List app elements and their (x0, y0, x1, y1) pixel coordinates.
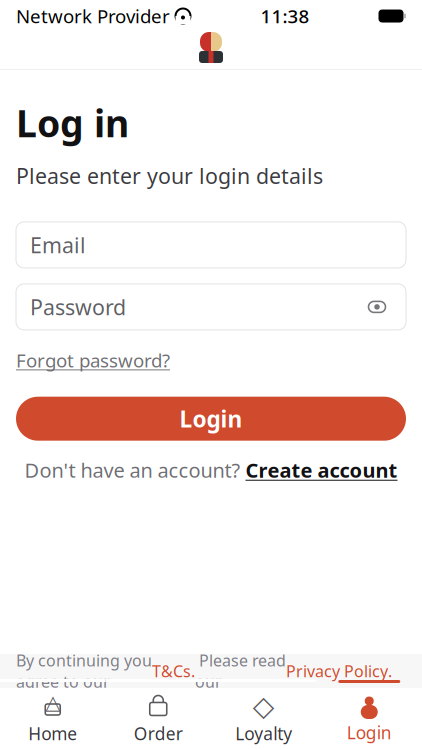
staticText: Login (179, 404, 242, 434)
button[interactable]: △ (0, 683, 105, 750)
button[interactable]: Order (105, 683, 211, 750)
staticText: Create account (245, 457, 397, 483)
staticText: T&Cs. (152, 660, 195, 682)
button[interactable]: T&Cs. (152, 660, 195, 682)
staticText: Please enter your login details (16, 162, 323, 190)
staticText: Privacy Policy. (286, 660, 392, 682)
staticText: Login (347, 721, 392, 744)
staticText: Don't have an account? (24, 457, 240, 483)
button[interactable]: Login (316, 684, 422, 750)
staticText: △ (45, 691, 60, 714)
staticText: Email (30, 231, 86, 259)
staticText: Please read our (195, 650, 286, 692)
staticText: Password (30, 293, 126, 321)
staticText: By continuing you agree to our (16, 650, 152, 692)
staticText: Forgot password? (16, 348, 170, 373)
button[interactable]: Create account (245, 457, 397, 483)
button[interactable]: Forgot password? (16, 348, 170, 373)
staticText: Network Provider (16, 4, 170, 28)
staticText: ◇ (253, 690, 275, 722)
button[interactable]: Show password (362, 292, 392, 322)
button[interactable]: Privacy Policy. (286, 660, 392, 682)
staticText: Loyalty (235, 722, 292, 745)
button[interactable]: Login (16, 397, 406, 441)
staticText: Order (134, 722, 183, 745)
staticText: Log in (16, 98, 129, 148)
button[interactable]: ◇ (211, 683, 316, 750)
staticText: 11:38 (260, 4, 309, 28)
staticText: Home (28, 722, 77, 745)
